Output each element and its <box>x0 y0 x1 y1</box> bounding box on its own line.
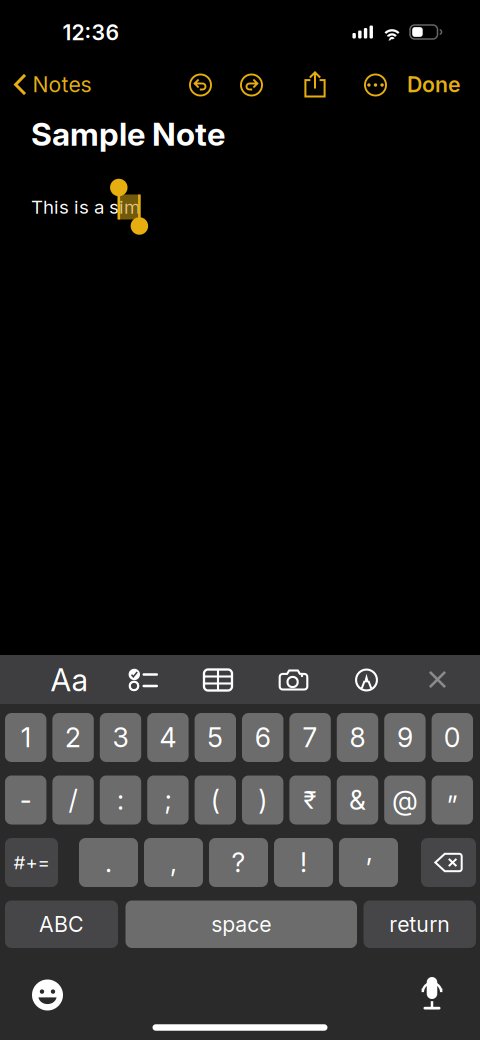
staticText: #+= <box>13 851 49 874</box>
button[interactable]: More <box>356 65 395 104</box>
button[interactable]: Emoji <box>21 968 74 1021</box>
button[interactable]: ₹ <box>289 775 331 824</box>
button[interactable]: ; <box>147 775 189 824</box>
button[interactable]: 5 <box>195 713 236 762</box>
button[interactable]: 3 <box>100 713 141 762</box>
button[interactable]: Notes <box>14 64 108 104</box>
button[interactable]: ” <box>432 775 473 824</box>
staticText: . <box>105 846 112 879</box>
staticText: ? <box>231 846 245 879</box>
staticText: space <box>211 911 271 937</box>
button[interactable]: Done <box>393 64 461 104</box>
button[interactable]: ’ <box>339 838 398 887</box>
button[interactable]: Redo <box>232 65 271 104</box>
staticText: 12:36 <box>62 20 119 45</box>
staticText: Notes <box>33 72 92 97</box>
staticText: Sample Note <box>31 115 225 153</box>
staticText: ABC <box>39 911 84 937</box>
button[interactable]: 8 <box>337 713 378 762</box>
staticText: 0 <box>444 721 461 754</box>
button[interactable] <box>421 838 476 887</box>
staticText: 1 <box>21 721 31 754</box>
button[interactable]: Dictate <box>410 966 453 1021</box>
staticText: 6 <box>255 721 271 754</box>
staticText: , <box>170 846 177 879</box>
staticText: 8 <box>349 721 365 754</box>
staticText: 4 <box>159 721 176 754</box>
button[interactable]: ( <box>195 775 236 824</box>
staticText: 5 <box>207 721 223 754</box>
staticText: / <box>69 784 78 816</box>
button[interactable]: return <box>363 900 476 948</box>
staticText: ’ <box>365 852 371 885</box>
button[interactable]: @ <box>384 775 426 824</box>
staticText: ” <box>447 790 458 822</box>
staticText: ; <box>164 784 171 816</box>
button[interactable]: , <box>144 838 203 887</box>
staticText: - <box>20 784 32 816</box>
button[interactable]: 0 <box>432 713 473 762</box>
button[interactable]: Hide keyboard <box>413 657 461 701</box>
button[interactable]: Undo <box>181 65 220 104</box>
button[interactable]: 1 <box>5 713 46 762</box>
button[interactable]: . <box>79 838 138 887</box>
button[interactable]: Checklist <box>119 658 167 702</box>
staticText: 9 <box>397 721 413 754</box>
button[interactable]: & <box>337 775 378 824</box>
button[interactable]: Aa <box>45 658 93 702</box>
button[interactable]: : <box>100 775 141 824</box>
staticText: This is a sim <box>31 196 140 218</box>
button[interactable]: / <box>52 775 94 824</box>
button[interactable]: ) <box>242 775 283 824</box>
button[interactable]: space <box>125 900 357 948</box>
button[interactable]: 7 <box>289 713 331 762</box>
button[interactable]: Share <box>296 63 334 106</box>
button[interactable]: #+= <box>5 838 58 887</box>
button[interactable]: 9 <box>384 713 426 762</box>
staticText: ₹ <box>304 785 317 814</box>
staticText: ) <box>258 784 267 816</box>
staticText: return <box>389 911 450 937</box>
staticText: Aa <box>50 661 88 698</box>
button[interactable]: ! <box>274 838 333 887</box>
button[interactable]: Table <box>194 658 242 702</box>
button[interactable]: Camera <box>269 658 317 702</box>
staticText: 2 <box>65 721 81 754</box>
staticText: & <box>349 784 366 816</box>
button[interactable]: Markup <box>342 658 390 702</box>
staticText: ( <box>211 784 220 816</box>
staticText: 7 <box>303 721 318 754</box>
staticText: ! <box>300 846 307 879</box>
staticText: : <box>117 784 124 816</box>
button[interactable]: 2 <box>52 713 94 762</box>
button[interactable]: - <box>5 775 46 824</box>
button[interactable]: ? <box>209 838 268 887</box>
staticText: 3 <box>112 721 128 754</box>
button[interactable]: ABC <box>5 900 118 948</box>
button[interactable]: 6 <box>242 713 283 762</box>
staticText: Done <box>407 72 461 97</box>
button[interactable]: 4 <box>147 713 189 762</box>
staticText: @ <box>392 784 418 816</box>
